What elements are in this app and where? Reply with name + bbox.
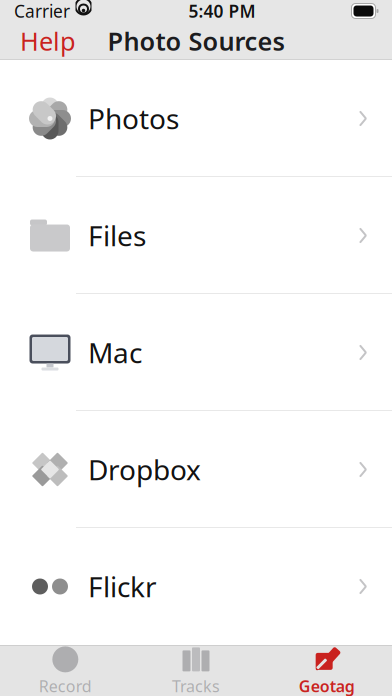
button[interactable]: Record <box>0 640 131 696</box>
staticText: Tracks <box>172 675 220 696</box>
staticText: Carrier <box>14 0 70 22</box>
staticText: Record <box>39 675 92 696</box>
button[interactable]: Files <box>0 177 392 294</box>
button[interactable]: Mac <box>0 294 392 411</box>
staticText: Geotag <box>299 675 355 696</box>
staticText: Photos <box>88 100 179 137</box>
button[interactable]: Photos <box>0 60 392 177</box>
staticText: Photo Sources <box>107 24 284 58</box>
staticText: Flickr <box>88 568 157 605</box>
button[interactable]: Help <box>14 18 82 64</box>
staticText: Mac <box>88 334 142 371</box>
staticText: Files <box>88 217 146 254</box>
button[interactable]: Dropbox <box>0 411 392 528</box>
button[interactable]: Geotag <box>261 640 392 696</box>
button[interactable]: Flickr <box>0 528 392 645</box>
button[interactable]: Tracks <box>131 640 261 696</box>
staticText: 5:40 PM <box>188 0 255 22</box>
staticText: Dropbox <box>88 451 201 488</box>
staticText: Help <box>20 24 76 58</box>
